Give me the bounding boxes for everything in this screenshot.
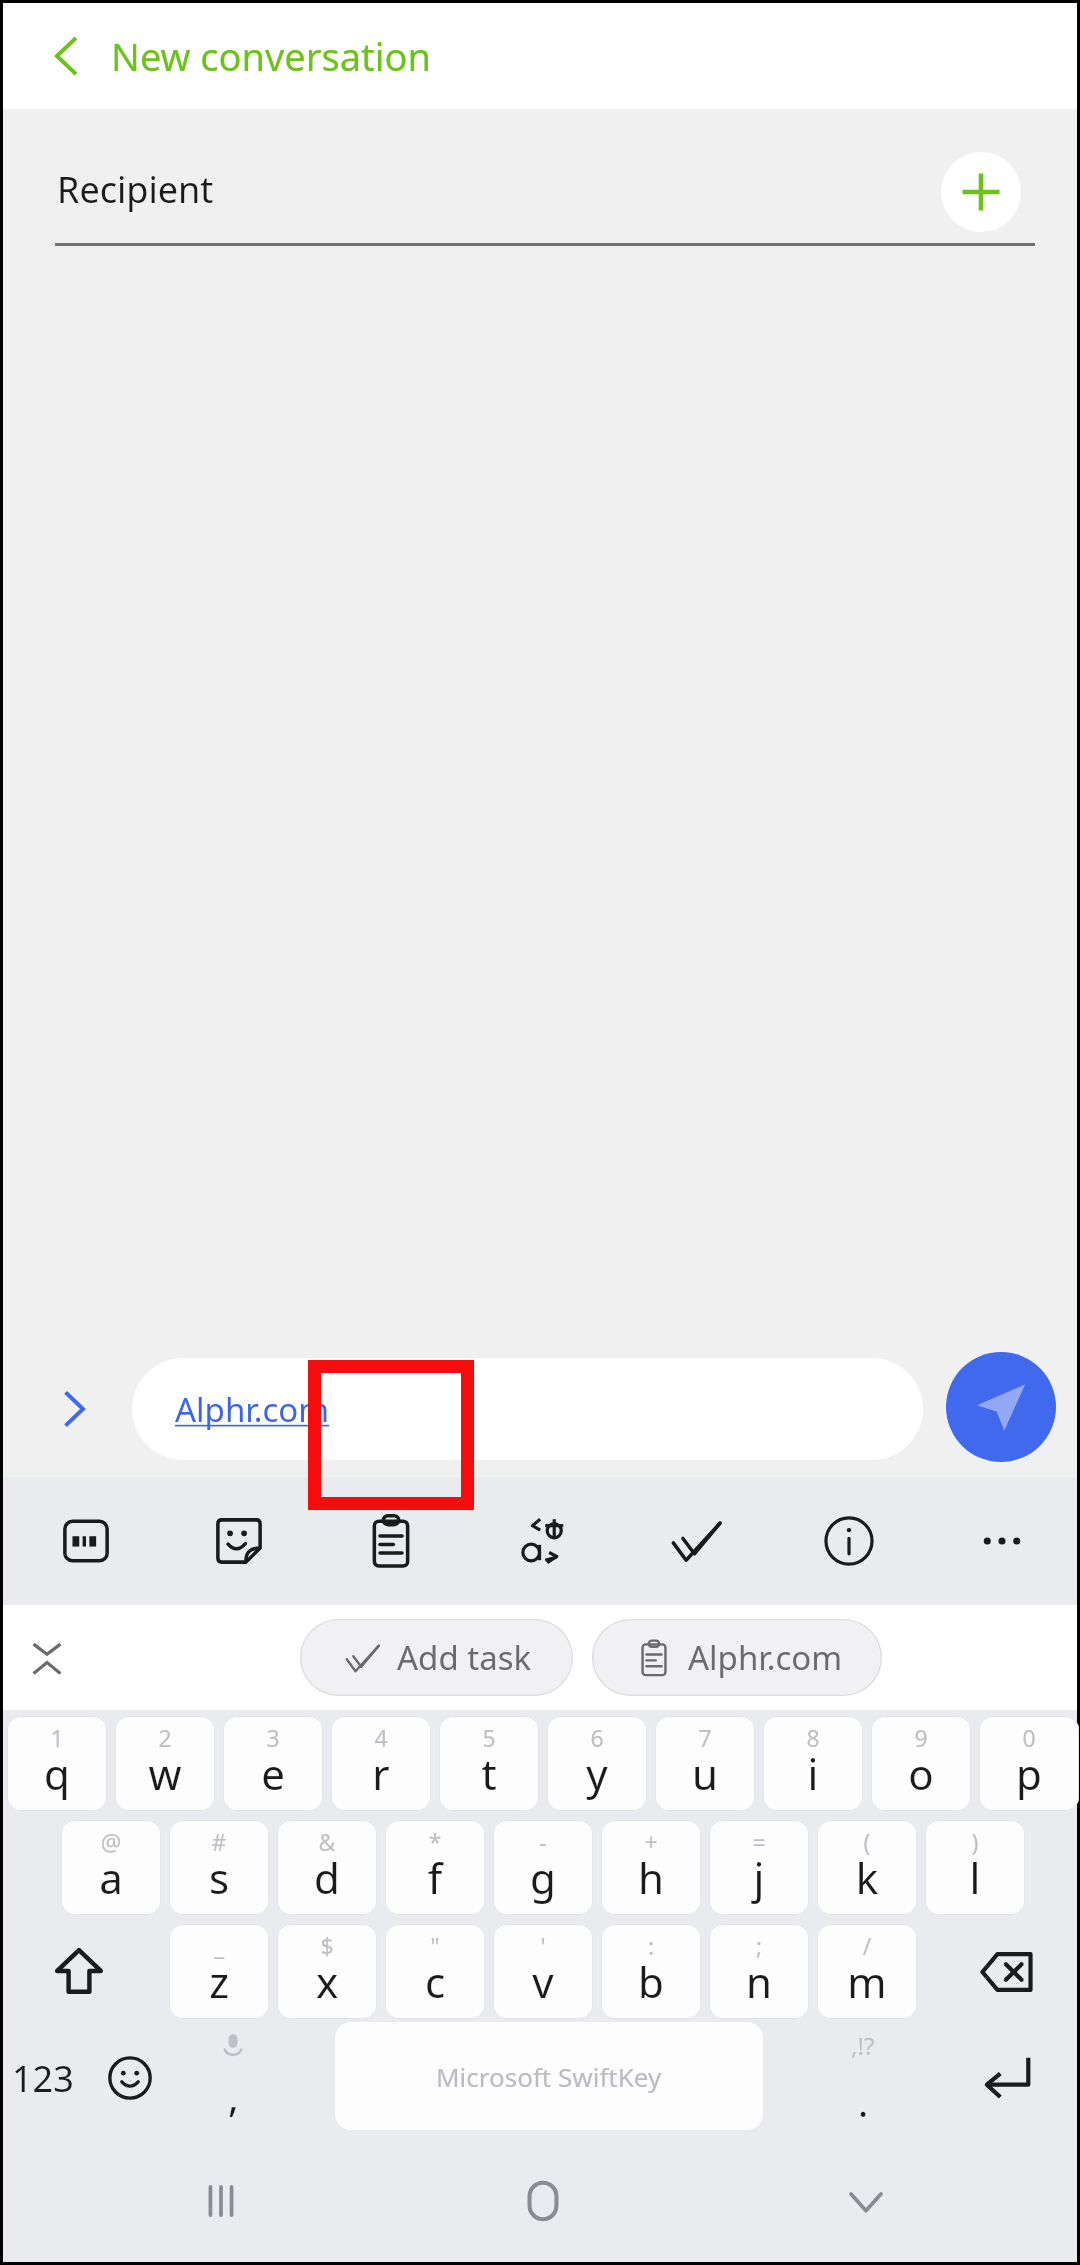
button[interactable]: : (601, 1924, 701, 2019)
staticText: s (169, 1849, 269, 1906)
staticText: 9 (871, 1722, 971, 1753)
staticText: e (223, 1745, 323, 1802)
staticText: k (817, 1849, 917, 1906)
staticText: - (493, 1826, 593, 1857)
staticText: $ (277, 1930, 377, 1961)
staticText: Alphr.com (175, 1387, 330, 1432)
button[interactable]: 4 (331, 1716, 431, 1811)
button[interactable]: # (169, 1820, 269, 1915)
button[interactable]: ) (925, 1820, 1025, 1915)
staticText: 5 (439, 1722, 539, 1753)
staticText: 6 (547, 1722, 647, 1753)
staticText: h (601, 1849, 701, 1906)
button[interactable]: + (601, 1820, 701, 1915)
button[interactable]: - (493, 1820, 593, 1915)
staticText: 3 (223, 1722, 323, 1753)
button[interactable]: Space (335, 2022, 763, 2130)
staticText: / (817, 1930, 917, 1961)
staticText: New conversation (111, 30, 431, 82)
staticText: j (709, 1849, 809, 1906)
button[interactable]: Collapse toolbar (3, 1615, 91, 1701)
staticText: ' (493, 1930, 593, 1961)
button[interactable]: ' (493, 1924, 593, 2019)
button[interactable]: GIF (10, 1477, 162, 1605)
button[interactable]: Alphr.com (132, 1358, 923, 1460)
button[interactable]: = (709, 1820, 809, 1915)
staticText: Microsoft SwiftKey (436, 2059, 662, 2094)
staticText: ( (817, 1826, 917, 1857)
staticText: b (601, 1953, 701, 2010)
staticText: r (331, 1745, 431, 1802)
button[interactable]: $ (277, 1924, 377, 2019)
staticText: ,!? (851, 2029, 875, 2062)
button[interactable]: Translate (468, 1477, 620, 1605)
staticText: 7 (655, 1722, 755, 1753)
button[interactable]: & (277, 1820, 377, 1915)
staticText: 2 (115, 1722, 215, 1753)
button[interactable]: Send (946, 1352, 1056, 1462)
staticText: Alphr.com (688, 1635, 843, 1680)
button[interactable]: Back (29, 18, 105, 94)
button[interactable]: Backspace (937, 1924, 1077, 2019)
staticText: + (601, 1826, 701, 1857)
button[interactable]: 7 (655, 1716, 755, 1811)
button[interactable]: Shift (9, 1924, 149, 2019)
button[interactable]: More options (926, 1477, 1078, 1605)
staticText: = (709, 1826, 809, 1857)
staticText: 1 (7, 1722, 107, 1753)
staticText: , (228, 2069, 239, 2123)
button[interactable]: Add recipient (941, 152, 1021, 232)
staticText: p (979, 1745, 1079, 1802)
button[interactable]: Emoji (87, 2028, 173, 2128)
staticText: 0 (979, 1722, 1079, 1753)
button[interactable]: / (817, 1924, 917, 2019)
staticText: 8 (763, 1722, 863, 1753)
staticText: _ (169, 1930, 269, 1961)
staticText: ) (925, 1826, 1025, 1857)
button[interactable]: 6 (547, 1716, 647, 1811)
button[interactable]: 5 (439, 1716, 539, 1811)
button[interactable]: 0 (979, 1716, 1079, 1811)
button[interactable]: Numbers (3, 2028, 83, 2128)
button[interactable]: Tasks (621, 1477, 773, 1605)
staticText: . (858, 2076, 869, 2128)
button[interactable]: 2 (115, 1716, 215, 1811)
staticText: a (61, 1849, 161, 1906)
staticText: 4 (331, 1722, 431, 1753)
staticText: m (817, 1953, 917, 2010)
button[interactable]: 3 (223, 1716, 323, 1811)
button[interactable]: Period (813, 2028, 913, 2128)
button[interactable]: ; (709, 1924, 809, 2019)
staticText: 123 (12, 2054, 74, 2103)
staticText: d (277, 1849, 377, 1906)
staticText: q (7, 1745, 107, 1802)
staticText: @ (61, 1826, 161, 1857)
button[interactable]: @ (61, 1820, 161, 1915)
button[interactable]: ( (817, 1820, 917, 1915)
staticText: : (601, 1930, 701, 1961)
button[interactable]: * (385, 1820, 485, 1915)
staticText: v (493, 1953, 593, 2010)
button[interactable]: 9 (871, 1716, 971, 1811)
button[interactable]: Home (500, 2158, 586, 2244)
button[interactable]: Hide keyboard (823, 2158, 909, 2244)
button[interactable]: Alphr.com (592, 1619, 882, 1696)
button[interactable]: Expand (39, 1373, 111, 1445)
button[interactable]: " (385, 1924, 485, 2019)
staticText: Add task (397, 1635, 532, 1680)
staticText: t (439, 1745, 539, 1802)
button[interactable]: Enter (937, 2028, 1077, 2128)
staticText: w (115, 1745, 215, 1802)
button[interactable]: Clipboard (315, 1477, 467, 1605)
button[interactable]: Comma (183, 2028, 283, 2128)
button[interactable]: 8 (763, 1716, 863, 1811)
button[interactable]: Recent apps (178, 2158, 264, 2244)
button[interactable]: _ (169, 1924, 269, 2019)
button[interactable]: Info (773, 1477, 925, 1605)
staticText: c (385, 1953, 485, 2010)
button[interactable]: 1 (7, 1716, 107, 1811)
staticText: i (763, 1745, 863, 1802)
button[interactable]: Add task (300, 1619, 573, 1696)
button[interactable]: Stickers (163, 1477, 315, 1605)
staticText: # (169, 1826, 269, 1857)
